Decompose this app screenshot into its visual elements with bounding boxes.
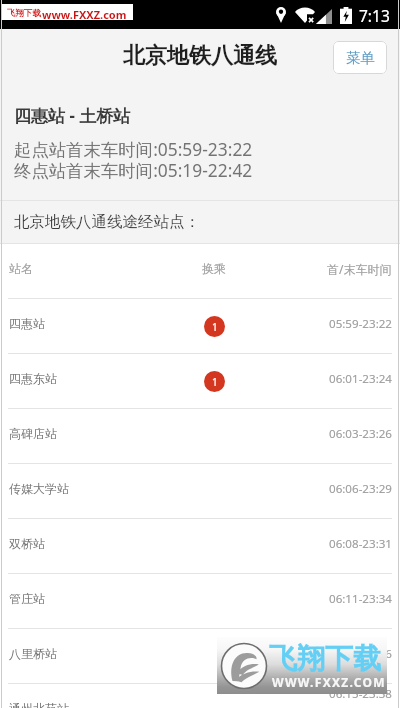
- button[interactable]: 菜单: [333, 41, 387, 74]
- other: Location: [276, 7, 286, 23]
- staticText: 八里桥站: [9, 646, 57, 661]
- staticText: 终点站首末车时间:05:19-22:42: [14, 158, 253, 182]
- staticText: 06:13-23:36: [329, 646, 393, 662]
- staticText: 05:59-23:22: [329, 316, 393, 332]
- staticText: www.FXXZ.com: [42, 7, 127, 22]
- staticText: 双桥站: [9, 536, 45, 551]
- staticText: 06:06-23:29: [329, 481, 393, 497]
- button[interactable]: 双桥站: [0, 519, 400, 574]
- button[interactable]: 通州北苑站: [0, 684, 400, 708]
- staticText: 飞翔下载: [269, 641, 381, 676]
- staticText: 管庄站: [9, 591, 45, 606]
- staticText: 首/末车时间: [327, 261, 392, 277]
- staticText: 菜单: [346, 49, 375, 67]
- button[interactable]: 八里桥站: [0, 629, 400, 684]
- staticText: 四惠站: [9, 316, 45, 331]
- staticText: 06:11-23:34: [329, 591, 393, 607]
- staticText: 通州北苑站: [9, 701, 69, 708]
- staticText: 北京地铁八通线途经站点：: [14, 212, 200, 232]
- staticText: 传媒大学站: [9, 481, 69, 496]
- staticText: 北京地铁八通线: [123, 42, 277, 70]
- other: Signal: [316, 9, 332, 24]
- staticText: 06:15-23:38: [329, 686, 393, 702]
- staticText: 四惠东站: [9, 371, 57, 386]
- staticText: 1: [212, 375, 218, 389]
- other: Wifi: [295, 8, 315, 23]
- staticText: 高碑店站: [9, 426, 57, 441]
- staticText: 飞翔下载: [7, 8, 41, 19]
- staticText: 四惠站 - 土桥站: [14, 104, 131, 127]
- staticText: WWW.FXXZ.COM: [272, 674, 386, 690]
- button[interactable]: 四惠站: [0, 299, 400, 354]
- staticText: 站名: [9, 261, 33, 276]
- button[interactable]: 四惠东站: [0, 354, 400, 409]
- staticText: 06:08-23:31: [329, 536, 393, 552]
- staticText: 06:03-23:26: [329, 426, 393, 442]
- staticText: 起点站首末车时间:05:59-23:22: [14, 137, 253, 161]
- button[interactable]: 高碑店站: [0, 409, 400, 464]
- staticText: 换乘: [202, 261, 226, 276]
- staticText: 7:13: [359, 5, 390, 26]
- staticText: 06:01-23:24: [329, 371, 393, 387]
- button[interactable]: 传媒大学站: [0, 464, 400, 519]
- staticText: 1: [212, 320, 218, 334]
- button[interactable]: 管庄站: [0, 574, 400, 629]
- other: Battery: [340, 7, 352, 24]
